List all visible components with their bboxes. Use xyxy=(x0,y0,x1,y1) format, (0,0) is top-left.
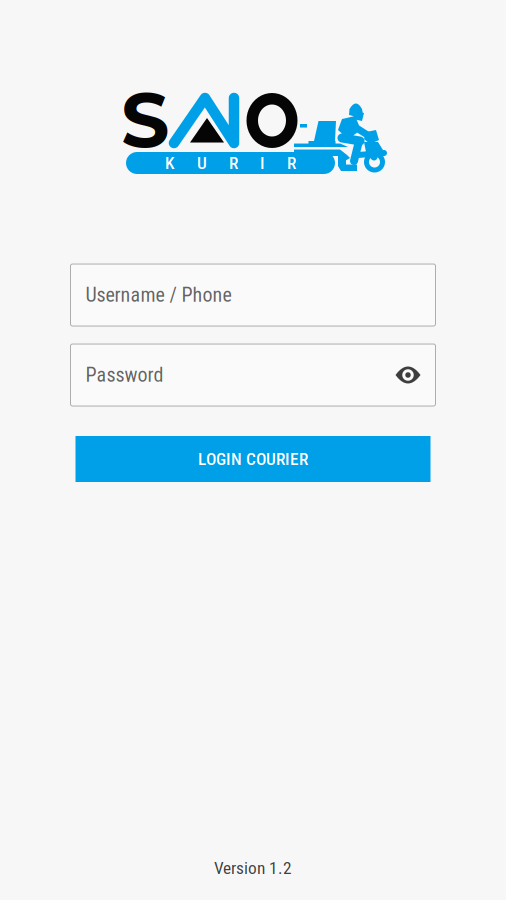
staticText: Password xyxy=(85,363,163,387)
staticText: Username / Phone xyxy=(85,283,231,307)
button[interactable]: Show password xyxy=(395,365,420,384)
staticText: S xyxy=(121,74,169,167)
button[interactable]: Username / Phone xyxy=(70,264,435,326)
staticText: LOGIN COURIER xyxy=(198,449,308,469)
staticText: K U R I R xyxy=(165,153,296,173)
staticText: Version 1.2 xyxy=(214,858,292,878)
button[interactable]: LOGIN COURIER xyxy=(75,436,430,482)
